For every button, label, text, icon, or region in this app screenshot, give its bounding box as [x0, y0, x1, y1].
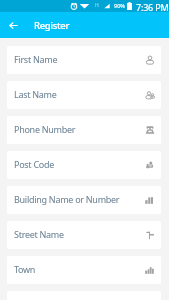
button[interactable]: Street Name	[7, 221, 161, 249]
staticText: Street Name	[14, 228, 145, 240]
staticText: First Name	[14, 53, 145, 65]
staticText: H	[95, 2, 99, 9]
button[interactable]: First Name	[7, 46, 161, 74]
staticText: 7:36 PM	[136, 1, 169, 13]
button[interactable]: Post Code	[7, 151, 161, 179]
staticText: 90%	[114, 2, 125, 9]
staticText: Last Name	[14, 88, 145, 100]
button[interactable]: Building Name or Number	[7, 186, 161, 214]
staticText: Town	[14, 263, 145, 275]
staticText: Post Code	[14, 158, 145, 170]
button[interactable]: Town	[7, 256, 161, 284]
staticText: Phone Number	[14, 123, 145, 135]
staticText: Building Name or Number	[14, 193, 145, 205]
staticText: Register	[34, 19, 70, 32]
button[interactable]: Back	[0, 12, 27, 38]
button[interactable]: Last Name	[7, 81, 161, 109]
button[interactable]: Phone Number	[7, 116, 161, 144]
